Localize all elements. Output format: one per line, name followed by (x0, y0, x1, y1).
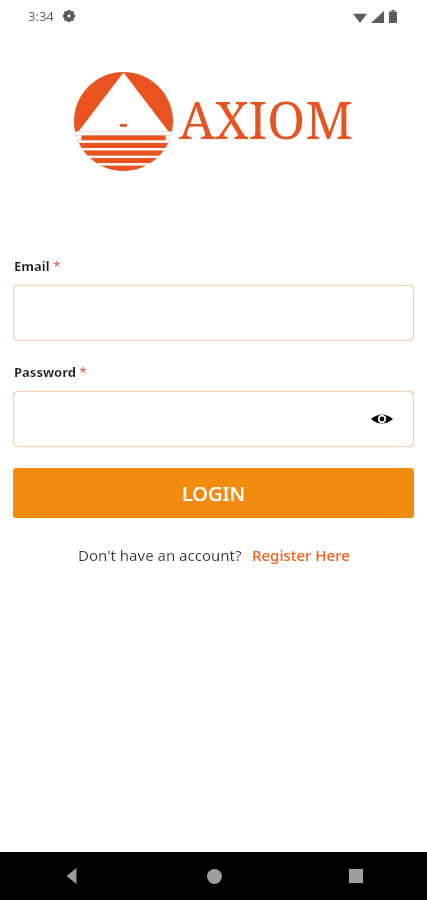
staticText: AXIOM (179, 84, 354, 153)
button[interactable] (13, 285, 414, 341)
staticText: Don't have an account? (78, 545, 242, 565)
staticText: LOGIN (182, 480, 246, 507)
staticText: Register Here (252, 545, 350, 565)
button[interactable]: LOGIN (13, 468, 414, 518)
staticText: 3:34 (28, 7, 54, 25)
staticText: Password * (14, 362, 87, 381)
staticText: Email * (14, 256, 61, 275)
button[interactable]: Back (0, 852, 143, 900)
button[interactable]: Home (143, 852, 285, 900)
button[interactable]: Show password (13, 391, 414, 447)
button[interactable]: Recent apps (285, 852, 427, 900)
button[interactable]: Show password (364, 401, 400, 437)
button[interactable]: Register Here (252, 545, 350, 565)
